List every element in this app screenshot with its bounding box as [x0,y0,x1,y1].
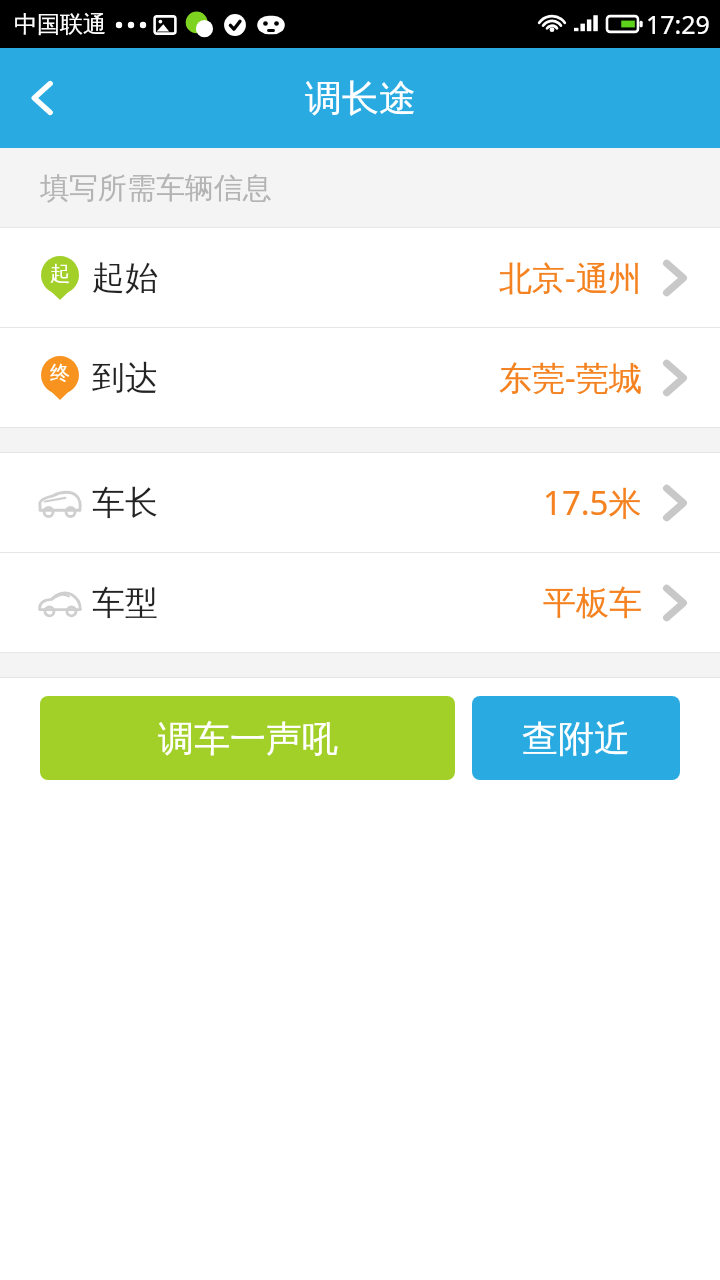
button[interactable]: 调车一声吼 [40,696,455,780]
staticText: 填写所需车辆信息 [40,170,272,207]
staticText: 到达 [92,357,158,399]
staticText: 17.5米 [543,480,642,525]
staticText: 查附近 [522,716,630,761]
button[interactable]: 起 [0,228,720,327]
staticText: 17:29 [646,7,710,41]
staticText: 起始 [92,257,158,299]
staticText: 车长 [92,482,158,524]
button[interactable]: 终 [0,328,720,427]
staticText: 北京-通州 [499,255,642,300]
button[interactable]: 查附近 [472,696,680,780]
button[interactable]: Back [0,48,86,148]
staticText: 起 [50,261,70,286]
staticText: 平板车 [543,582,642,624]
button[interactable]: 车型 [0,553,720,652]
staticText: 调车一声吼 [158,716,338,761]
staticText: 东莞-莞城 [499,355,642,400]
staticText: 调长途 [305,75,416,122]
staticText: 终 [50,361,70,386]
staticText: 中国联通 [14,10,106,39]
button[interactable]: 车长 [0,453,720,552]
staticText: 车型 [92,582,158,624]
